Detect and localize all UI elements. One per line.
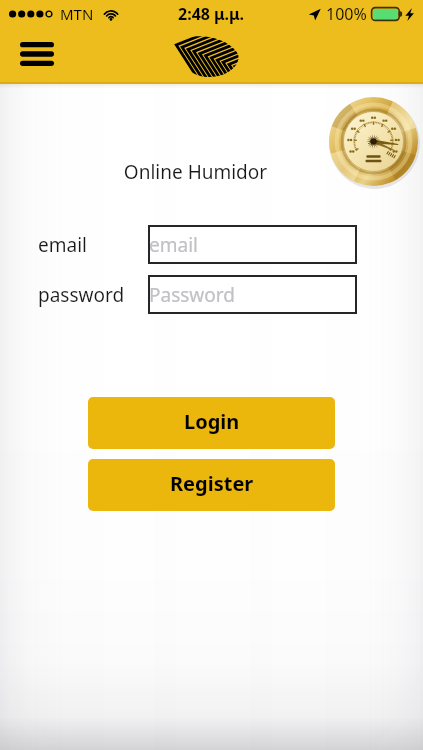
staticText: MTN	[60, 4, 94, 24]
staticText: Login	[184, 408, 240, 435]
staticText: 100%	[326, 3, 367, 25]
staticText: password	[38, 282, 125, 308]
button[interactable]: Password	[148, 275, 357, 314]
staticText: email	[149, 232, 198, 258]
button[interactable]: Login	[88, 397, 335, 449]
staticText: Register	[170, 470, 254, 497]
staticText: 2:48 μ.μ.	[178, 3, 244, 25]
staticText: email	[38, 232, 87, 258]
staticText: Online Humidor	[0, 159, 407, 185]
button[interactable]: Open navigation menu	[12, 34, 61, 74]
button[interactable]: Register	[88, 459, 335, 511]
button[interactable]: email	[148, 225, 357, 264]
staticText: Password	[149, 282, 235, 308]
